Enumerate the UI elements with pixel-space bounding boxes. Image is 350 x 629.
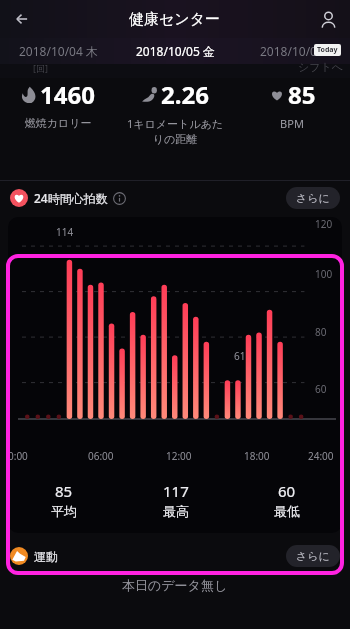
staticText: 0:00 [8, 449, 28, 463]
button[interactable]: 60 [231, 481, 342, 519]
staticText: BPM [234, 116, 350, 131]
button[interactable]: 2.26 [116, 78, 234, 146]
button[interactable]: Information [113, 192, 126, 205]
staticText: 最低 [274, 503, 300, 519]
staticText: 本日のデータ無し [122, 577, 228, 593]
staticText: 117 [163, 481, 189, 501]
staticText: 85 [288, 78, 316, 111]
staticText: 18:00 [244, 449, 270, 463]
staticText: 2.26 [161, 78, 209, 111]
staticText: 平均 [51, 503, 77, 519]
staticText: 114 [56, 225, 74, 239]
button[interactable]: 1460 [0, 78, 116, 130]
button[interactable]: 2018/10/04 木 [0, 38, 116, 64]
button[interactable]: Back [4, 1, 40, 37]
button[interactable]: さらに [286, 187, 340, 209]
button[interactable]: 2018/10/05 金 [116, 38, 234, 64]
staticText: 85 [55, 481, 73, 501]
staticText: 100 [315, 267, 333, 281]
staticText: 24:00 [308, 449, 334, 463]
staticText: 2018/10/05 金 [136, 43, 215, 59]
button[interactable]: Profile [310, 1, 346, 37]
staticText: シフトへ [298, 60, 344, 74]
staticText: さらに [296, 549, 330, 563]
staticText: 60 [278, 481, 296, 501]
staticText: 60 [315, 382, 327, 396]
staticText: 24時間心拍数 [34, 190, 108, 206]
staticText: さらに [296, 191, 330, 205]
staticText: 運動 [34, 549, 58, 564]
staticText: 61 [234, 349, 246, 363]
button[interactable]: 85 [234, 78, 350, 131]
staticText: 120 [315, 217, 333, 231]
button[interactable]: さらに [286, 545, 340, 567]
button[interactable]: 2018/10/06 [234, 38, 350, 64]
staticText: 最高 [163, 503, 189, 519]
staticText: 12:00 [166, 449, 192, 463]
button[interactable]: 85 [8, 481, 120, 519]
staticText: 80 [315, 325, 327, 339]
staticText: 06:00 [88, 449, 114, 463]
staticText: 2018/10/06 [260, 43, 324, 59]
staticText: 1460 [40, 78, 95, 111]
button[interactable]: 本日のデータ無し [0, 573, 350, 629]
button[interactable]: 117 [120, 481, 231, 519]
button[interactable]: 114 [8, 217, 342, 533]
staticText: 燃焼カロリー [0, 116, 116, 130]
staticText: 健康センター [129, 10, 221, 29]
staticText: [回] [33, 62, 48, 74]
staticText: Today [317, 45, 338, 55]
staticText: 1キロメートルあた りの距離 [116, 116, 234, 146]
staticText: 2018/10/04 木 [19, 43, 98, 59]
